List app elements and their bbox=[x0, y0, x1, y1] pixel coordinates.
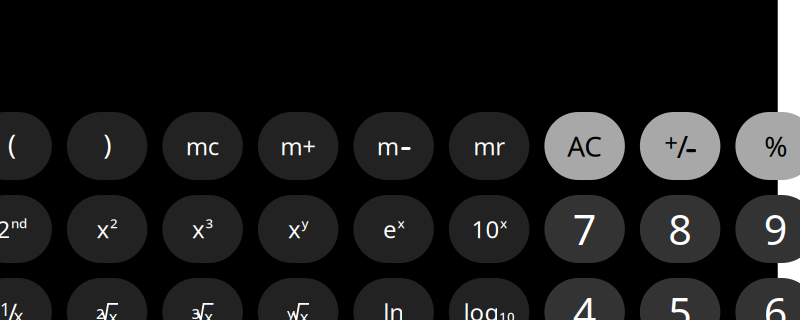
button[interactable]: x to the y bbox=[258, 195, 338, 263]
staticText: 2 bbox=[110, 214, 118, 232]
button[interactable]: memory add bbox=[258, 112, 338, 180]
staticText: y bbox=[287, 303, 295, 320]
staticText: ( bbox=[8, 125, 16, 163]
staticText: ) bbox=[103, 125, 111, 163]
button[interactable]: all clear bbox=[544, 112, 625, 180]
staticText: y bbox=[301, 214, 308, 232]
staticText: x bbox=[397, 214, 404, 232]
button[interactable]: eight bbox=[640, 195, 720, 263]
button[interactable]: seven bbox=[544, 195, 625, 263]
staticText: x bbox=[288, 213, 301, 245]
button[interactable]: memory clear bbox=[162, 112, 243, 180]
staticText: m bbox=[377, 130, 399, 162]
staticText: x bbox=[96, 213, 109, 245]
staticText: 10 bbox=[499, 308, 515, 320]
staticText: + bbox=[664, 126, 678, 158]
staticText: 10 bbox=[471, 213, 499, 245]
staticText: x bbox=[108, 305, 117, 320]
staticText: / bbox=[8, 295, 17, 320]
staticText: 1 bbox=[0, 296, 11, 320]
staticText: nd bbox=[11, 214, 27, 232]
button[interactable]: nine bbox=[735, 195, 800, 263]
button[interactable]: six bbox=[735, 278, 800, 320]
button[interactable]: square root bbox=[67, 278, 147, 320]
staticText: mr bbox=[473, 130, 505, 162]
staticText: 4 bbox=[573, 285, 597, 320]
button[interactable]: second bbox=[0, 195, 52, 263]
button[interactable]: natural log bbox=[353, 278, 434, 320]
staticText: 2 bbox=[96, 303, 104, 320]
staticText: 6 bbox=[764, 285, 788, 320]
staticText: x bbox=[13, 303, 23, 320]
button[interactable]: memory subtract bbox=[353, 112, 434, 180]
button[interactable]: four bbox=[544, 278, 625, 320]
staticText: e bbox=[383, 213, 397, 245]
staticText: 3 bbox=[191, 303, 199, 320]
staticText: log bbox=[463, 296, 499, 320]
staticText: 9 bbox=[764, 202, 788, 256]
button[interactable]: x squared bbox=[67, 195, 147, 263]
staticText: x bbox=[192, 213, 205, 245]
staticText: ln bbox=[383, 296, 404, 320]
button[interactable]: memory recall bbox=[449, 112, 529, 180]
staticText: 7 bbox=[573, 202, 597, 256]
staticText: m+ bbox=[280, 130, 316, 162]
button[interactable]: one over x bbox=[0, 278, 52, 320]
button[interactable]: plus minus bbox=[640, 112, 720, 180]
staticText: x bbox=[500, 214, 507, 232]
staticText: x bbox=[204, 305, 213, 320]
staticText: % bbox=[764, 127, 787, 165]
staticText: / bbox=[677, 126, 688, 166]
staticText: mc bbox=[186, 130, 220, 162]
staticText: 5 bbox=[668, 285, 692, 320]
button[interactable]: right parenthesis bbox=[67, 112, 147, 180]
button[interactable]: x cubed bbox=[162, 195, 243, 263]
staticText: 2 bbox=[0, 213, 10, 245]
staticText: 3 bbox=[205, 214, 213, 232]
staticText: AC bbox=[567, 127, 602, 165]
button[interactable]: percent bbox=[735, 112, 800, 180]
button[interactable]: y root of x bbox=[258, 278, 338, 320]
button[interactable]: log base ten bbox=[449, 278, 529, 320]
button[interactable]: cube root bbox=[162, 278, 243, 320]
staticText: x bbox=[299, 305, 308, 320]
button[interactable]: five bbox=[640, 278, 720, 320]
button[interactable]: ten to the x bbox=[449, 195, 529, 263]
button[interactable]: e to the x bbox=[353, 195, 434, 263]
button[interactable]: left parenthesis bbox=[0, 112, 52, 180]
staticText: 8 bbox=[668, 202, 692, 256]
